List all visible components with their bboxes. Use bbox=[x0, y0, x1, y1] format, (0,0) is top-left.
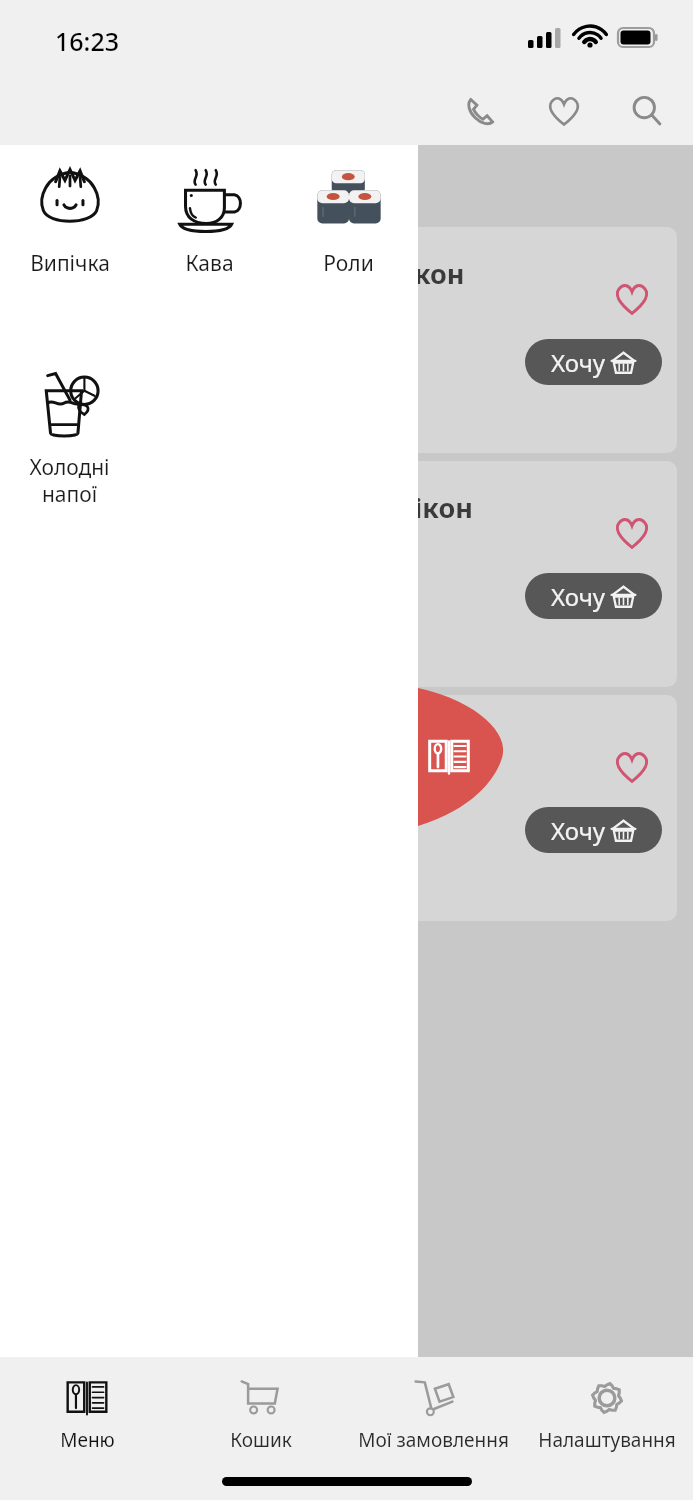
staticText: кон bbox=[418, 255, 465, 292]
button[interactable]: Мої замовлення bbox=[347, 1371, 520, 1457]
button[interactable]: Search bbox=[621, 85, 673, 137]
button[interactable]: Хочу bbox=[525, 807, 662, 853]
staticText: Мої замовлення bbox=[358, 1427, 509, 1453]
staticText: Налаштування bbox=[538, 1427, 676, 1453]
staticText: Меню bbox=[60, 1427, 115, 1453]
staticText: ікон bbox=[418, 489, 473, 526]
button[interactable]: Холодні напої bbox=[0, 349, 139, 516]
button[interactable]: Favorite bbox=[610, 511, 654, 555]
button[interactable]: Call bbox=[455, 85, 507, 137]
staticText: Хочу bbox=[551, 814, 605, 847]
button[interactable]: Налаштування bbox=[520, 1371, 693, 1457]
staticText: Кава bbox=[185, 249, 234, 278]
staticText: Хочу bbox=[551, 346, 605, 379]
button[interactable]: Favorite bbox=[418, 695, 677, 921]
staticText: Роли bbox=[323, 249, 374, 278]
button[interactable]: Хочу bbox=[525, 339, 662, 385]
staticText: Холодні напої bbox=[29, 453, 110, 508]
button[interactable]: ікон bbox=[418, 461, 677, 687]
button[interactable]: Favorite bbox=[610, 277, 654, 321]
button[interactable]: кон bbox=[418, 227, 677, 453]
button[interactable]: Меню bbox=[0, 1371, 174, 1457]
button[interactable]: Menu bbox=[418, 688, 504, 826]
staticText: Випічка bbox=[30, 249, 110, 278]
staticText: 16:23 bbox=[55, 24, 120, 58]
staticText: Кошик bbox=[230, 1427, 292, 1453]
button[interactable]: Кошик bbox=[174, 1371, 347, 1457]
button[interactable]: Кава bbox=[140, 145, 279, 286]
button[interactable]: Хочу bbox=[525, 573, 662, 619]
button[interactable]: Favorites bbox=[538, 85, 590, 137]
button[interactable]: Роли bbox=[279, 145, 418, 286]
button[interactable]: Випічка bbox=[0, 145, 140, 286]
button[interactable]: Favorite bbox=[610, 745, 654, 789]
staticText: Хочу bbox=[551, 580, 605, 613]
